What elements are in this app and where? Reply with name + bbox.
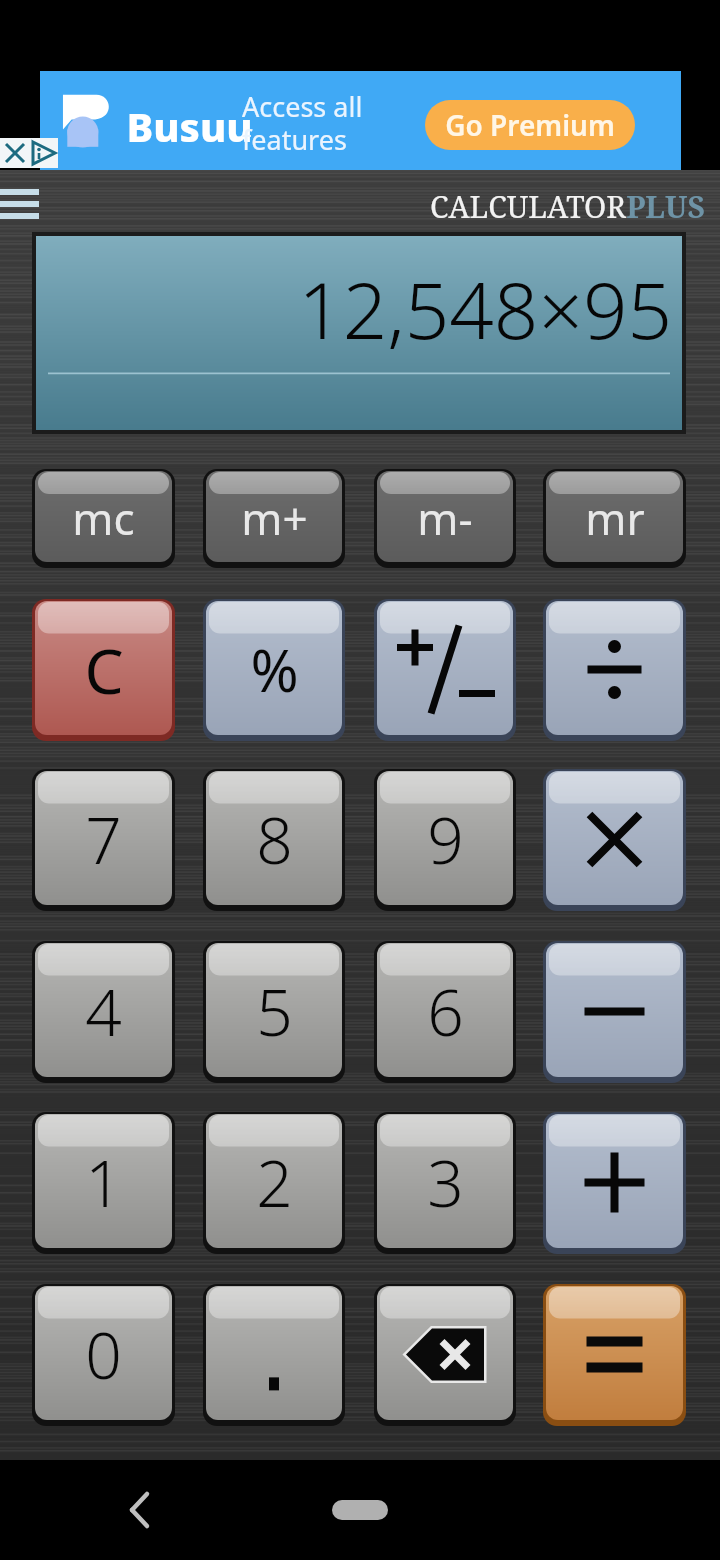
button[interactable]: 0: [32, 1283, 175, 1426]
button[interactable]: m+: [203, 468, 345, 568]
button[interactable]: 3: [374, 1111, 516, 1254]
staticText: 6: [427, 968, 464, 1055]
button[interactable]: Minus: [543, 940, 686, 1083]
button[interactable]: 5: [203, 940, 345, 1083]
staticText: mr: [585, 488, 645, 548]
staticText: 5: [256, 968, 293, 1055]
staticText: Busuu: [126, 99, 253, 153]
staticText: 3: [427, 1139, 464, 1226]
button[interactable]: C: [32, 598, 175, 741]
staticText: CALCULATOR: [430, 186, 626, 227]
button[interactable]: 4: [32, 940, 175, 1083]
button[interactable]: Go Premium: [425, 100, 635, 150]
button[interactable]: Multiply: [543, 768, 686, 911]
button[interactable]: Plus: [543, 1111, 686, 1254]
staticText: PLUS: [626, 186, 705, 227]
staticText: %: [250, 630, 299, 709]
button[interactable]: 12,548×95: [32, 232, 686, 434]
button[interactable]: Back: [110, 1485, 170, 1535]
button[interactable]: Backspace: [374, 1283, 516, 1426]
staticText: 0: [85, 1311, 122, 1398]
staticText: Go Premium: [445, 106, 615, 144]
staticText: C: [84, 628, 124, 712]
button[interactable]: Plus minus sign toggle: [374, 598, 516, 741]
button[interactable]: m-: [374, 468, 516, 568]
staticText: 7: [85, 796, 122, 883]
staticText: 4: [85, 968, 122, 1055]
button[interactable]: mr: [543, 468, 686, 568]
button[interactable]: mc: [32, 468, 175, 568]
staticText: mc: [72, 488, 135, 548]
staticText: 9: [427, 796, 464, 883]
button[interactable]: 6: [374, 940, 516, 1083]
staticText: Access all: [242, 88, 363, 125]
staticText: m-: [417, 488, 473, 548]
button[interactable]: 2: [203, 1111, 345, 1254]
button[interactable]: Equals: [543, 1283, 686, 1426]
staticText: 2: [256, 1139, 293, 1226]
staticText: 8: [256, 796, 293, 883]
button[interactable]: Busuu: [40, 71, 681, 170]
button[interactable]: %: [203, 598, 345, 741]
button[interactable]: 8: [203, 768, 345, 911]
button[interactable]: Menu: [0, 184, 36, 216]
button[interactable]: Decimal point: [203, 1283, 345, 1426]
button[interactable]: 7: [32, 768, 175, 911]
button[interactable]: Close ad: [0, 138, 58, 168]
button[interactable]: 1: [32, 1111, 175, 1254]
staticText: 12,548×95: [32, 256, 672, 362]
staticText: m+: [241, 488, 308, 548]
staticText: features: [242, 121, 347, 158]
staticText: 1: [85, 1139, 122, 1226]
button[interactable]: 9: [374, 768, 516, 911]
button[interactable]: Divide: [543, 598, 686, 741]
button[interactable]: Home: [332, 1500, 388, 1520]
